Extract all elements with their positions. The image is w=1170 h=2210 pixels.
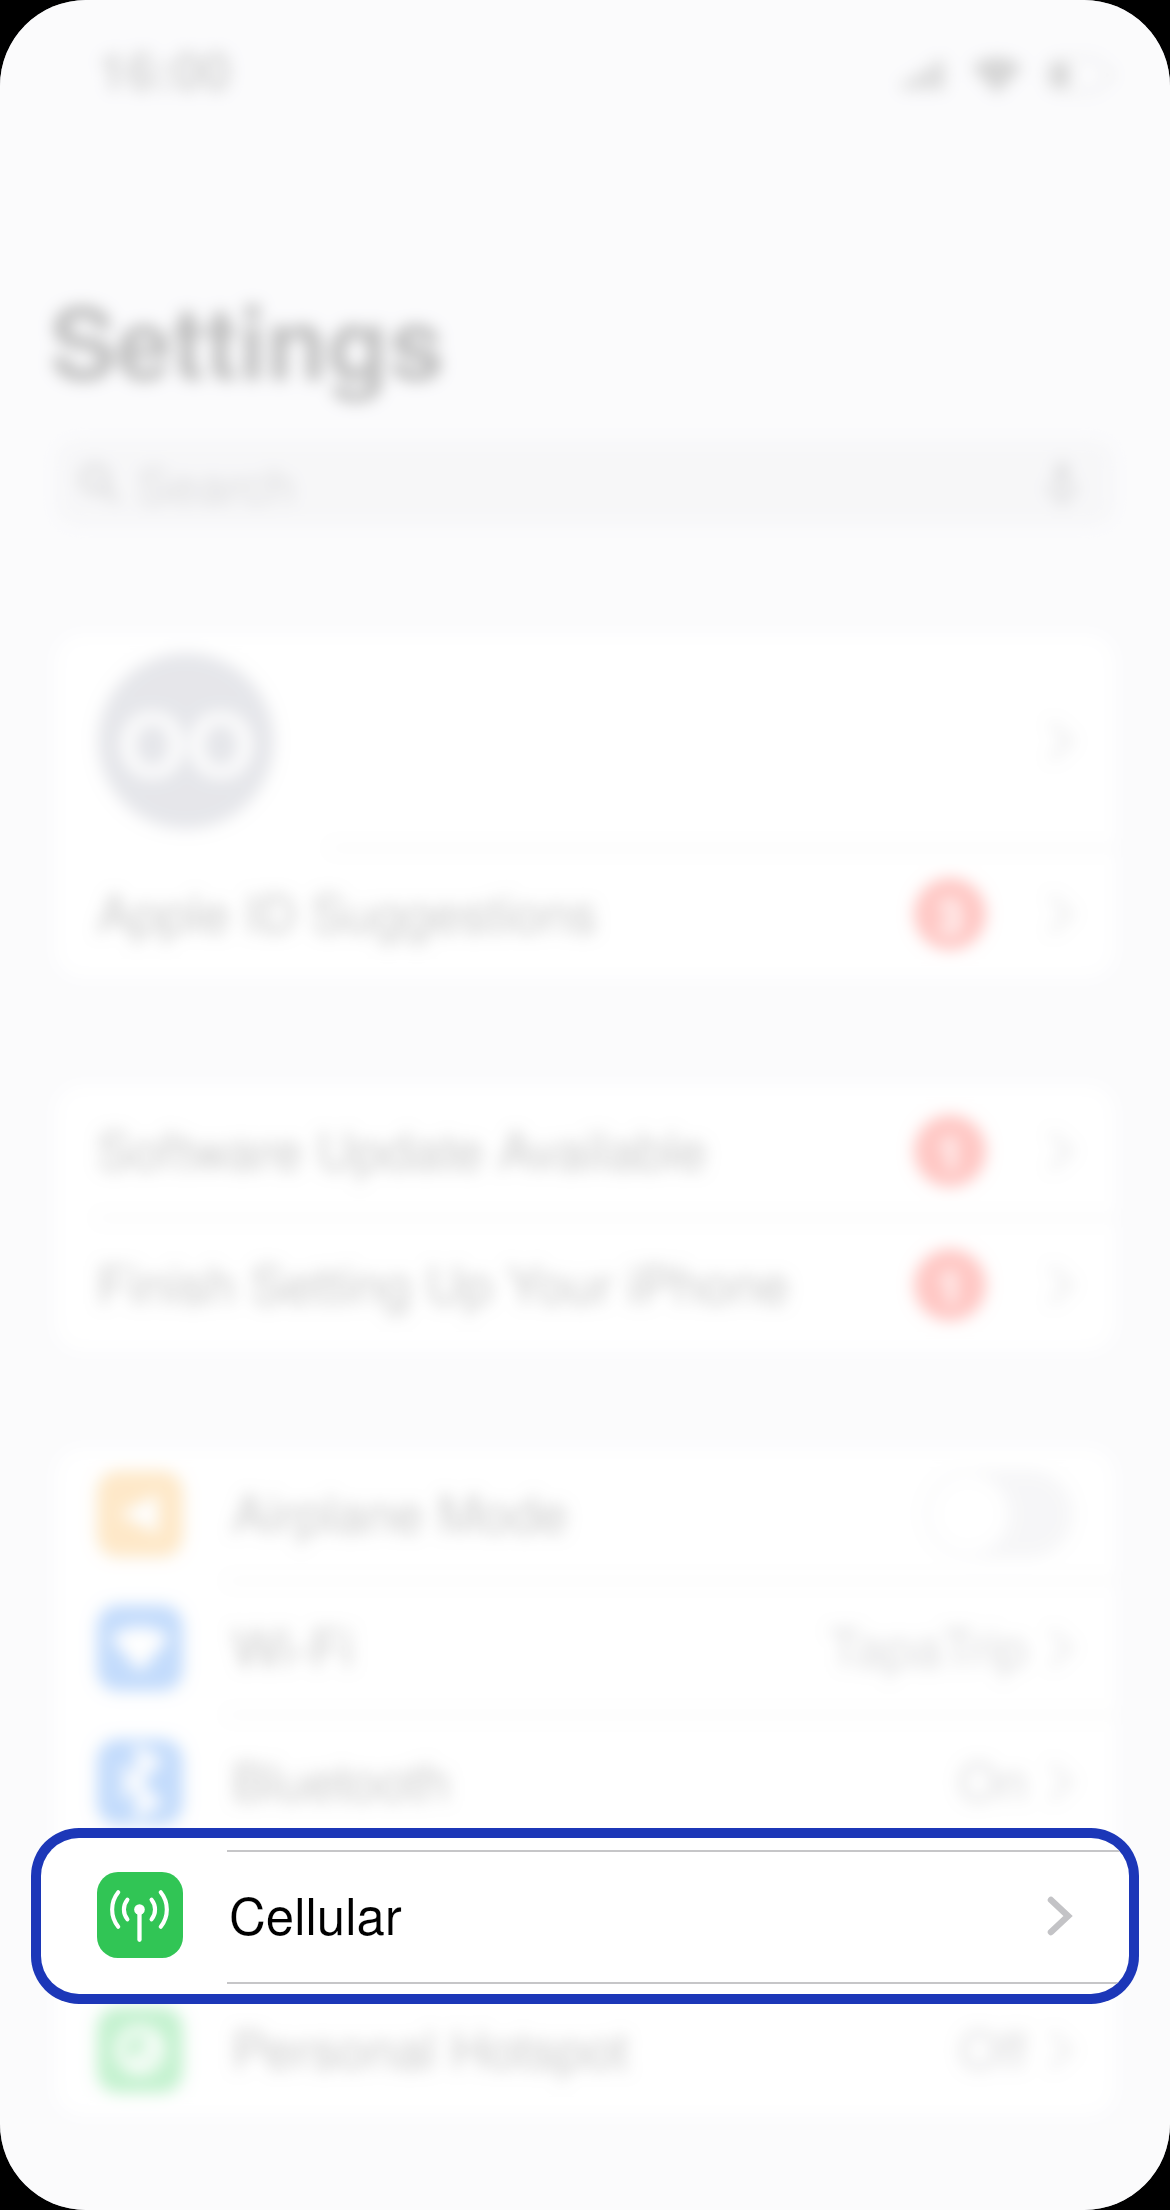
staticText: 1 (937, 1118, 963, 1184)
button[interactable]: Finish Setting Up Your iPhone (55, 1219, 1115, 1351)
staticText: On (958, 1741, 1028, 1815)
staticText: 3 (937, 881, 963, 947)
button[interactable]: Cellular (55, 1850, 1115, 1982)
staticText: Wi-Fi (232, 1607, 354, 1681)
staticText: 16:00 (98, 31, 231, 105)
staticText: Search (137, 447, 296, 519)
button[interactable]: Bluetooth (55, 1716, 1115, 1848)
staticText: OO (118, 678, 255, 804)
staticText: Cellular (229, 1876, 402, 1949)
button[interactable]: Airplane Mode (55, 1448, 1115, 1580)
staticText: Software Update Available (97, 1110, 707, 1184)
button[interactable]: Airplane Mode toggle (925, 1470, 1073, 1558)
button[interactable]: Software Update Available (55, 1085, 1115, 1217)
staticText: Cellular (232, 1875, 409, 1949)
button[interactable]: Apple ID Suggestions (55, 849, 1115, 978)
button[interactable]: Cellular (41, 1838, 1129, 1994)
staticText: Apple ID Suggestions (97, 873, 597, 947)
staticText: TapaTrip (829, 1607, 1028, 1681)
staticText: Settings (50, 267, 444, 410)
staticText: Finish Setting Up Your iPhone (97, 1244, 789, 1318)
button[interactable]: Wi-Fi (55, 1582, 1115, 1714)
staticText: Bluetooth (232, 1741, 450, 1815)
button[interactable]: OO (55, 634, 1115, 847)
staticText: Personal Hotspot (232, 2009, 629, 2083)
staticText: Off (959, 2009, 1028, 2083)
button[interactable]: Personal Hotspot (55, 1984, 1115, 2116)
staticText: Airplane Mode (232, 1473, 568, 1547)
staticText: 1 (937, 1252, 963, 1318)
